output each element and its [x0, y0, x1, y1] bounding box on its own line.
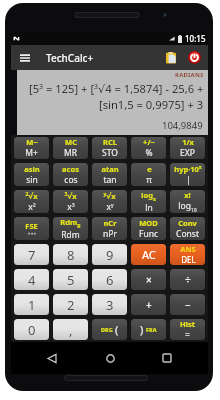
button[interactable]: MC — [53, 137, 88, 159]
staticText: MC — [65, 137, 77, 147]
staticText: xy — [106, 201, 114, 213]
button[interactable]: atan — [92, 163, 127, 186]
staticText: DEL — [181, 254, 196, 265]
staticText: • • • — [28, 231, 36, 237]
button[interactable]: 3√x — [53, 190, 88, 213]
button[interactable]: Clipboard — [161, 45, 181, 70]
staticText: RCL — [103, 137, 117, 147]
button[interactable]: Hist — [170, 319, 205, 340]
staticText: MOD — [139, 218, 158, 228]
button[interactable]: ) — [131, 319, 166, 340]
staticText: hyp·10x — [174, 164, 202, 174]
button[interactable]: 9 — [92, 244, 127, 265]
button[interactable]: 4 — [14, 269, 49, 290]
staticText: ANS — [180, 244, 196, 254]
staticText: FSE — [25, 221, 38, 231]
staticText: 8 — [67, 246, 75, 264]
button[interactable]: 2√x — [14, 190, 49, 213]
staticText: asin — [24, 164, 40, 174]
staticText: STO — [102, 147, 118, 159]
staticText: logx — [141, 190, 156, 202]
staticText: [sin1,5 = 0,9975] + 3 — [99, 97, 204, 112]
staticText: 4 — [28, 271, 36, 289]
staticText: TechCalc+ — [46, 51, 94, 65]
staticText: MR — [64, 147, 77, 159]
button[interactable]: +/− — [131, 137, 166, 159]
staticText: Rdm — [61, 229, 80, 240]
staticText: Conv — [178, 218, 197, 228]
button[interactable]: Menu — [16, 45, 34, 70]
staticText: DRG — [101, 326, 113, 333]
staticText: acos — [62, 164, 79, 174]
button[interactable]: MOD — [131, 217, 166, 240]
button[interactable]: Power — [184, 45, 204, 70]
staticText: 2√x — [25, 191, 38, 201]
staticText: 104,9849 — [162, 119, 203, 132]
staticText: 9 — [106, 246, 114, 264]
button[interactable]: M− — [14, 137, 49, 159]
button[interactable]: hyp·10x — [170, 163, 205, 186]
staticText: sin — [26, 174, 38, 186]
staticText: EXP — [180, 147, 195, 159]
button[interactable]: ÷ — [170, 269, 205, 290]
staticText: atan — [101, 164, 119, 174]
staticText: RADIANS — [175, 71, 204, 79]
staticText: RdmR — [60, 217, 81, 229]
button[interactable]: x! — [170, 190, 205, 213]
staticText: [53 = 125] + [3√4 = 1,5874] - 25,6 + — [29, 81, 204, 96]
button[interactable]: e — [131, 163, 166, 186]
button[interactable]: RCL — [92, 137, 127, 159]
button[interactable]: Home — [99, 346, 121, 370]
button[interactable]: asin — [14, 163, 49, 186]
button[interactable]: Conv — [170, 217, 205, 240]
staticText: 3 — [106, 296, 114, 314]
button[interactable]: acos — [53, 163, 88, 186]
button[interactable]: 6 — [92, 269, 127, 290]
staticText: e — [147, 164, 152, 174]
button[interactable]: 0 — [14, 319, 49, 340]
button[interactable]: × — [131, 269, 166, 290]
staticText: cos — [64, 174, 78, 186]
staticText: + — [146, 298, 152, 312]
staticText: 10:15 — [185, 33, 206, 44]
staticText: FRA — [146, 326, 157, 333]
staticText: 0 — [28, 321, 36, 339]
button[interactable]: − — [170, 294, 205, 315]
staticText: , — [69, 321, 73, 339]
button[interactable]: ANS — [170, 244, 205, 265]
button[interactable]: 1/x — [170, 137, 205, 159]
staticText: ln — [145, 202, 153, 213]
button[interactable]: AC — [131, 244, 166, 265]
button[interactable]: y√x — [92, 190, 127, 213]
button[interactable]: FSE — [14, 217, 49, 240]
button[interactable]: , — [53, 319, 88, 340]
staticText: ) — [140, 322, 144, 337]
button[interactable]: + — [131, 294, 166, 315]
button[interactable]: 2 — [53, 294, 88, 315]
staticText: 7 — [28, 246, 36, 264]
staticText: × — [146, 273, 152, 287]
staticText: x! — [184, 190, 191, 200]
staticText: % — [145, 147, 153, 159]
button[interactable]: 7 — [14, 244, 49, 265]
button[interactable]: 3 — [92, 294, 127, 315]
button[interactable]: 8 — [53, 244, 88, 265]
button[interactable]: Recents — [156, 346, 178, 370]
button[interactable]: nCr — [92, 217, 127, 240]
staticText: 2 — [67, 296, 75, 314]
staticText: 1/x — [182, 137, 194, 147]
button[interactable]: Back — [41, 346, 63, 370]
button[interactable]: 5 — [53, 269, 88, 290]
button[interactable]: DRG — [92, 319, 127, 340]
staticText: log10 — [178, 200, 197, 213]
staticText: y√x — [103, 191, 116, 201]
staticText: nCr — [103, 218, 117, 228]
button[interactable]: RdmR — [53, 217, 88, 240]
button[interactable]: 1 — [14, 294, 49, 315]
staticText: Hist — [180, 319, 195, 329]
button[interactable]: logx — [131, 190, 166, 213]
staticText: nPr — [103, 228, 117, 240]
staticText: | — [186, 174, 191, 186]
staticText: tan — [103, 174, 117, 186]
staticText: 3√x — [64, 191, 77, 201]
